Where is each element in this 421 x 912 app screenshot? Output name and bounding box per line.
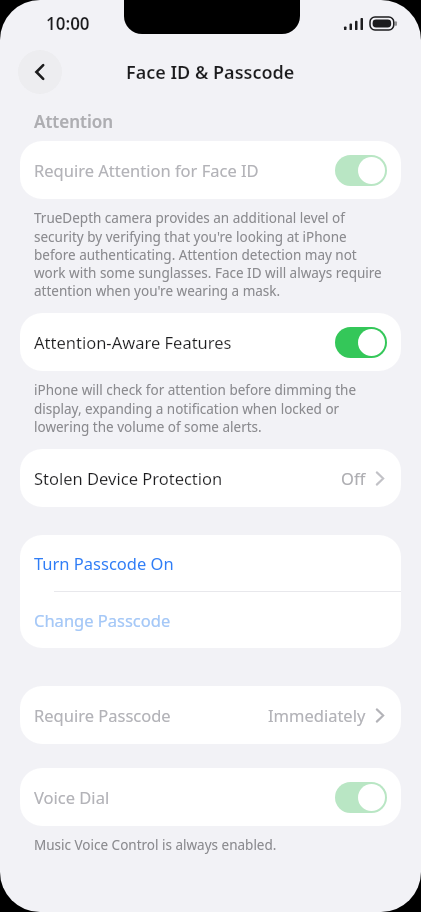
staticText: Require Attention for Face ID [34,159,335,181]
staticText: Turn Passcode On [34,552,174,574]
staticText: iPhone will check for attention before d… [34,381,383,435]
button[interactable]: Stolen Device Protection [20,449,401,507]
staticText: Change Passcode [34,609,171,631]
staticText: 10:00 [46,12,90,35]
staticText: TrueDepth camera provides an additional … [34,209,383,299]
button[interactable]: Require Passcode [20,686,401,744]
button[interactable]: Voice Dial [20,768,401,826]
button[interactable]: Toggle [335,782,387,813]
staticText: Music Voice Control is always enabled. [34,836,277,854]
staticText: Off [341,467,366,489]
staticText: Face ID & Passcode [126,60,295,85]
staticText: Voice Dial [34,786,335,808]
staticText: Require Passcode [34,704,268,726]
staticText: Stolen Device Protection [34,467,341,489]
staticText: Attention-Aware Features [34,331,335,353]
staticText: Immediately [268,704,366,726]
button[interactable]: Toggle [335,155,387,186]
button[interactable]: Toggle [335,327,387,358]
button[interactable]: Require Attention for Face ID [20,141,401,199]
button[interactable]: Attention-Aware Features [20,313,401,371]
button[interactable]: Back [18,50,62,94]
button[interactable]: Turn Passcode On [20,535,401,591]
staticText: Attention [34,110,114,133]
button[interactable]: Change Passcode [20,592,401,648]
